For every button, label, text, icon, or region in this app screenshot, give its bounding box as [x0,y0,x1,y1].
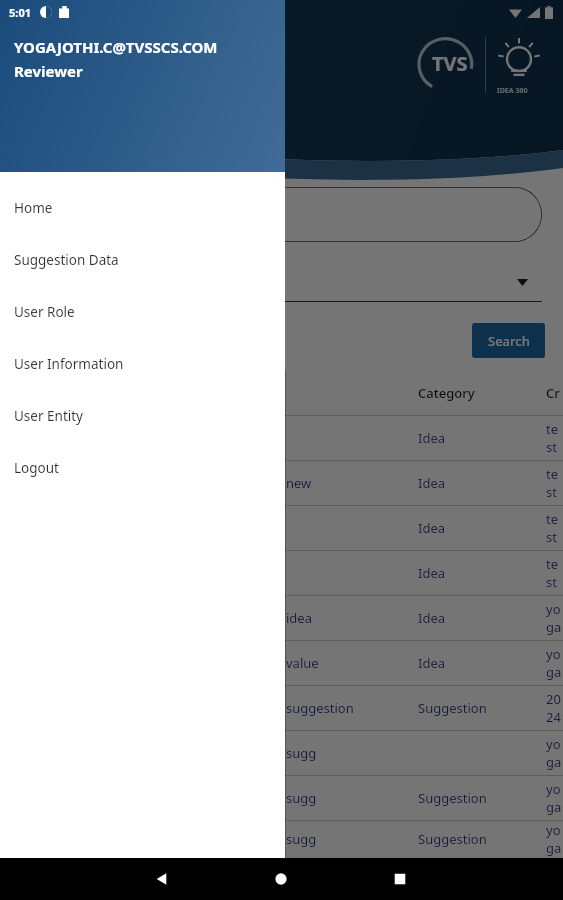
button[interactable]: SEARCH BY TITLE/CATEGORY [22,187,542,242]
staticText: Idea [418,609,446,627]
button[interactable]: Idea [0,505,563,550]
staticText: yoga [546,600,563,636]
staticText: IDEA 360 [497,86,528,96]
staticText: Suggestion [418,789,487,807]
staticText: Suggestion [418,699,487,717]
staticText: yoga [546,821,563,857]
staticText: yoga [546,780,563,816]
staticText: 2024 [546,690,563,726]
staticText: Home [14,199,53,217]
button[interactable]: new [0,460,563,505]
staticText: Logout [14,459,59,477]
button[interactable]: Idea [0,415,563,460]
button[interactable]: Suggestion Data [0,234,285,286]
staticText: Cr [546,384,560,402]
staticText: suggestion [286,699,354,717]
staticText: YOGAJOTHI.C@TVSSCS.COM [14,37,218,57]
button[interactable]: Select Status [22,262,542,302]
staticText: sugg [286,744,317,762]
button[interactable]: sugg [0,820,563,858]
staticText: Search [488,332,530,350]
button[interactable]: Idea [0,550,563,595]
staticText: Idea [418,654,446,672]
staticText: yoga [546,645,563,681]
button[interactable]: Logout [0,442,285,494]
button[interactable]: User Information [0,338,285,390]
staticText: Idea [418,474,446,492]
button[interactable]: Recent apps [388,867,412,891]
staticText: test [546,510,563,546]
staticText: Idea [418,429,446,447]
button[interactable]: sugg [0,730,563,775]
staticText: User Role [14,303,75,321]
staticText: sugg [286,830,317,848]
button[interactable]: Search [472,323,545,358]
button[interactable]: User Role [0,286,285,338]
staticText: new [286,474,312,492]
staticText: value [286,654,319,672]
staticText: Reviewer [14,61,83,81]
button[interactable]: Home [0,182,285,234]
button[interactable]: suggestion [0,685,563,730]
button[interactable]: sugg [0,775,563,820]
button[interactable]: value [0,640,563,685]
button[interactable]: Back [150,867,174,891]
staticText: idea [286,609,312,627]
staticText: Category [418,384,475,402]
staticText: Suggestion Data [14,251,119,269]
staticText: Suggestion [418,830,487,848]
staticText: Idea [418,564,446,582]
staticText: Idea [418,519,446,537]
staticText: User Entity [14,407,83,425]
staticText: TVS [432,50,468,77]
staticText: User Information [14,355,124,373]
staticText: SEARCH BY TITLE/CATEGORY [44,206,219,224]
staticText: yoga [546,735,563,771]
button[interactable]: idea [0,595,563,640]
staticText: test [546,555,563,591]
button[interactable]: User Entity [0,390,285,442]
staticText: 5:01 [9,5,31,20]
staticText: test [546,420,563,456]
button[interactable]: Home [269,867,293,891]
staticText: sugg [286,789,317,807]
staticText: test [546,465,563,501]
